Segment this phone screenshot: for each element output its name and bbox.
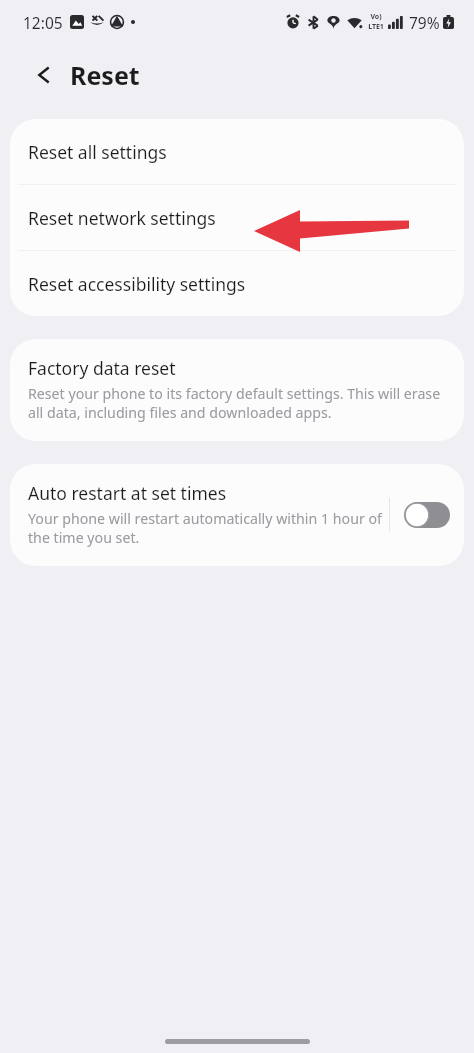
staticText: 12:05 (23, 12, 63, 33)
staticText: Reset your phone to its factory default … (28, 384, 446, 422)
staticText: LTE1 (368, 22, 384, 32)
button[interactable]: Reset all settings (10, 119, 464, 184)
staticText: Your phone will restart automatically wi… (28, 509, 385, 547)
staticText: 79% (409, 12, 440, 33)
button[interactable]: Reset network settings (10, 185, 464, 250)
button[interactable]: Reset accessibility settings (10, 251, 464, 316)
staticText: Reset accessibility settings (28, 272, 246, 296)
button[interactable]: Auto restart at set times (10, 464, 389, 566)
staticText: Auto restart at set times (28, 481, 227, 505)
staticText: Vo) (370, 12, 382, 22)
button[interactable]: Factory data reset (10, 339, 464, 441)
staticText: Reset (70, 58, 140, 92)
staticText: Reset all settings (28, 140, 167, 164)
staticText: Reset network settings (28, 206, 216, 230)
staticText: Factory data reset (28, 356, 176, 380)
button[interactable]: Back (24, 58, 58, 92)
button[interactable]: Auto restart toggle (390, 486, 464, 544)
